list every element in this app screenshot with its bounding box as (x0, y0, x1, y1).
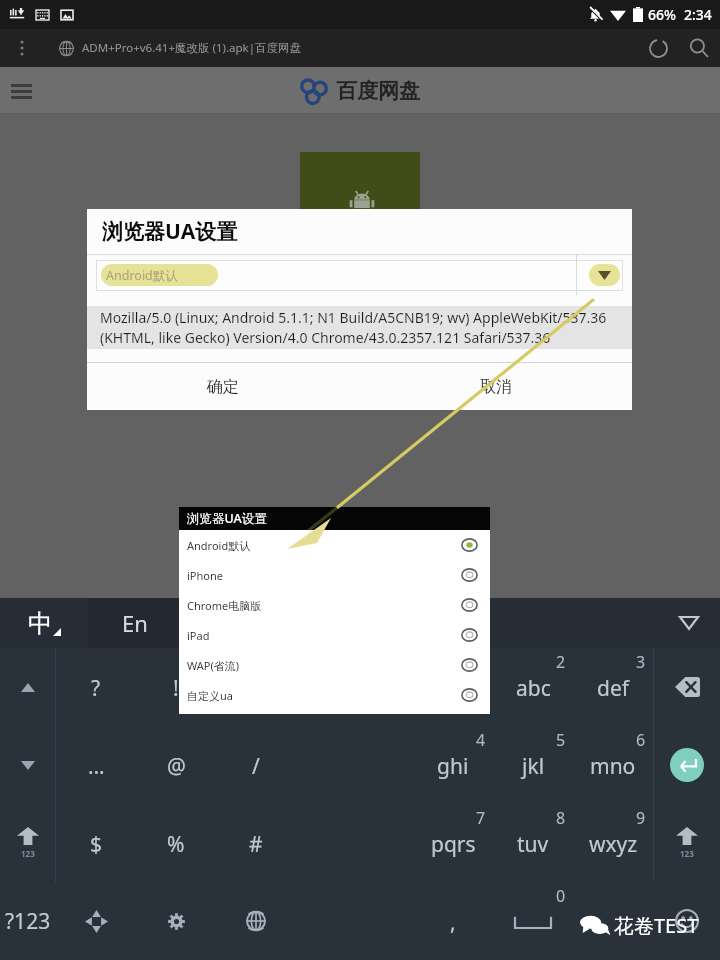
button[interactable]: Keyboard settings (136, 882, 216, 960)
button[interactable]: # (216, 804, 296, 882)
button[interactable]: Hide keyboard (674, 608, 704, 638)
button[interactable]: Android默认 (179, 530, 490, 560)
staticText: mno (590, 752, 636, 781)
button[interactable]: Search (684, 33, 714, 63)
button[interactable]: 确定 (87, 363, 359, 410)
button[interactable]: 3 (573, 648, 653, 726)
button[interactable]: 9 (573, 804, 653, 882)
staticText: WAP(省流) (187, 658, 461, 673)
staticText: En (122, 608, 148, 638)
staticText: ?123 (5, 907, 51, 936)
staticText: 7 (476, 807, 486, 829)
button[interactable]: 自定义ua (179, 680, 490, 710)
button[interactable]: ? (56, 648, 136, 726)
button[interactable]: 4 (413, 726, 493, 804)
staticText: 66% (648, 5, 676, 24)
button[interactable]: Previous candidate (0, 648, 55, 726)
staticText: 9 (636, 807, 646, 829)
staticText: ? (91, 674, 101, 703)
button[interactable]: 中 (0, 598, 88, 648)
button[interactable]: Switch language (216, 882, 296, 960)
staticText: Chrome电脑版 (187, 598, 461, 613)
staticText: wxyz (589, 830, 638, 859)
staticText: jkl (522, 752, 545, 781)
staticText: 0 (556, 885, 566, 907)
button[interactable]: Refresh (644, 34, 672, 62)
button[interactable]: 2 (493, 648, 573, 726)
staticText: 确定 (207, 377, 239, 397)
staticText: 8 (556, 807, 566, 829)
button[interactable]: % (136, 804, 216, 882)
button[interactable]: Emoji (654, 882, 720, 960)
staticText: 取消 (480, 377, 512, 397)
staticText: 花卷TEST (614, 912, 699, 939)
staticText: 中 (28, 608, 53, 639)
button[interactable]: / (216, 726, 296, 804)
staticText: def (597, 674, 629, 703)
staticText: # (249, 830, 263, 859)
button[interactable]: Space (493, 882, 573, 960)
staticText: 2 (556, 651, 566, 673)
staticText: $ (90, 830, 103, 859)
staticText: … (88, 752, 105, 781)
button[interactable]: , (413, 882, 493, 960)
button[interactable]: ! (136, 648, 216, 726)
staticText: ADM+Pro+v6.41+魔改版 (1).apk|百度网盘 (82, 40, 302, 56)
staticText: / (252, 752, 260, 781)
button[interactable]: iPad (179, 620, 490, 650)
button[interactable]: Android默认 (87, 255, 576, 295)
staticText: iPad (187, 628, 461, 643)
staticText: Android默认 (106, 267, 178, 284)
button[interactable]: Shift / numbers (0, 804, 55, 882)
button[interactable]: More options (12, 38, 32, 58)
staticText: ! (173, 674, 179, 703)
staticText: @ (167, 752, 186, 781)
staticText: 5 (556, 729, 566, 751)
staticText: tuv (517, 830, 549, 859)
button[interactable]: 5 (493, 726, 573, 804)
button[interactable]: WAP(省流) (179, 650, 490, 680)
button[interactable]: 7 (413, 804, 493, 882)
button[interactable]: Enter (654, 726, 720, 804)
staticText: ghi (437, 752, 469, 781)
staticText: Mozilla/5.0 (Linux; Android 5.1.1; N1 Bu… (100, 308, 619, 348)
staticText: pqrs (431, 830, 476, 859)
button[interactable]: … (56, 726, 136, 804)
button[interactable]: Menu (3, 73, 39, 109)
staticText: , (450, 908, 456, 937)
staticText: 百度网盘 (336, 78, 420, 104)
button[interactable]: Cursor control (56, 882, 136, 960)
staticText: 浏览器UA设置 (187, 510, 267, 527)
staticText: 2:34 (684, 5, 712, 24)
staticText: 自定义ua (187, 688, 461, 703)
staticText: 123 (680, 848, 694, 859)
button[interactable]: $ (56, 804, 136, 882)
button[interactable]: Open dropdown (577, 255, 632, 295)
staticText: 3 (636, 651, 646, 673)
staticText: % (167, 830, 185, 859)
staticText: 123 (21, 848, 35, 859)
button[interactable]: @ (136, 726, 216, 804)
staticText: 4 (476, 729, 486, 751)
button[interactable]: 8 (493, 804, 573, 882)
staticText: 6 (636, 729, 646, 751)
button[interactable]: Symbols (0, 882, 55, 960)
button[interactable]: Shift / numbers (654, 804, 720, 882)
button[interactable]: iPhone (179, 560, 490, 590)
staticText: iPhone (187, 568, 461, 583)
button[interactable]: Chrome电脑版 (179, 590, 490, 620)
button[interactable]: En (88, 598, 181, 648)
button[interactable]: Next candidate (0, 726, 55, 804)
staticText: 浏览器UA设置 (102, 217, 238, 246)
button[interactable]: 取消 (359, 363, 632, 410)
staticText: Android默认 (187, 538, 461, 553)
button[interactable]: 6 (573, 726, 653, 804)
button[interactable] (216, 648, 296, 726)
button[interactable]: Delete (654, 648, 720, 726)
staticText: abc (516, 674, 551, 703)
button[interactable] (573, 882, 653, 960)
